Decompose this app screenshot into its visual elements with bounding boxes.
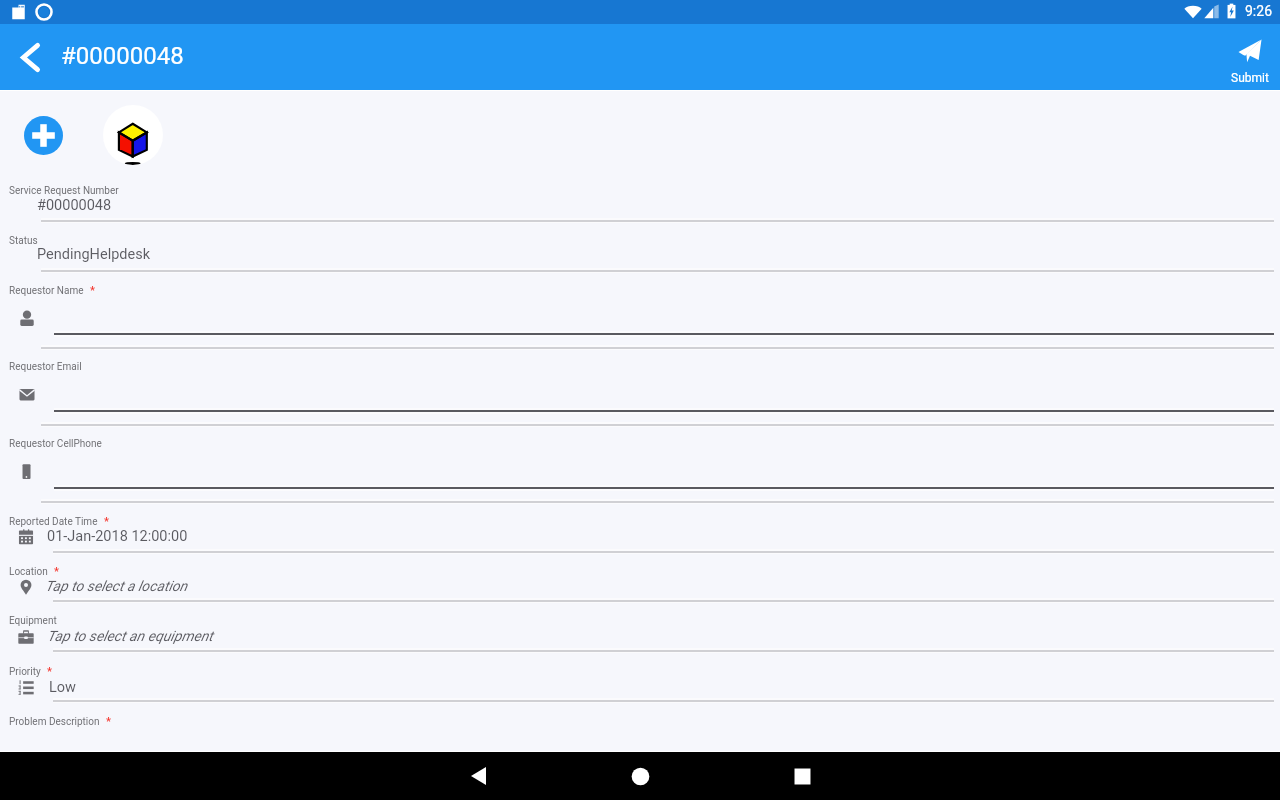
staticText: * — [47, 665, 52, 678]
button[interactable]: Location, tap to select a location — [0, 561, 1280, 600]
button[interactable]: Add attachment — [24, 116, 63, 155]
staticText: #00000048 — [61, 42, 184, 70]
staticText: Low — [49, 679, 76, 696]
staticText: * — [104, 515, 109, 528]
button[interactable]: Problem Description — [0, 711, 1280, 750]
staticText: Requestor CellPhone — [9, 438, 102, 450]
button[interactable]: Recents — [778, 752, 826, 800]
staticText: Requestor Name — [9, 285, 84, 297]
staticText: 9:26 — [1245, 3, 1272, 19]
staticText: Location — [9, 566, 48, 578]
button[interactable]: Home — [616, 752, 664, 800]
button[interactable]: Equipment, tap to select an equipment — [0, 611, 1280, 650]
staticText: Reported Date Time — [9, 516, 98, 528]
button[interactable]: Requestor CellPhone — [0, 434, 1280, 501]
staticText: 01-Jan-2018 12:00:00 — [47, 528, 188, 545]
button[interactable]: Status PendingHelpdesk — [0, 230, 1280, 270]
staticText: Problem Description — [9, 716, 100, 728]
button[interactable]: Submit — [1222, 24, 1278, 90]
staticText: Status — [9, 235, 38, 247]
staticText: Tap to select a location — [45, 578, 188, 595]
button[interactable]: Requestor Name — [0, 280, 1280, 347]
staticText: * — [90, 284, 95, 297]
staticText: Submit — [1231, 71, 1269, 85]
staticText: PendingHelpdesk — [37, 246, 151, 263]
staticText: Tap to select an equipment — [47, 628, 213, 645]
button[interactable]: Back — [454, 752, 502, 800]
button[interactable]: Service Request Number #00000048 — [0, 180, 1280, 220]
button[interactable]: Requestor Email — [0, 357, 1280, 424]
button[interactable]: Back — [0, 24, 60, 90]
staticText: #00000048 — [37, 197, 112, 214]
staticText: Service Request Number — [9, 185, 119, 197]
button[interactable]: Reported Date Time 01-Jan-2018 12:00:00 — [0, 511, 1280, 551]
staticText: Priority — [9, 666, 41, 678]
staticText: Equipment — [9, 615, 57, 627]
button[interactable]: Priority Low — [0, 661, 1280, 700]
staticText: Requestor Email — [9, 361, 82, 373]
staticText: * — [106, 715, 111, 728]
button[interactable]: Attachment — [103, 105, 163, 165]
staticText: * — [54, 565, 59, 578]
